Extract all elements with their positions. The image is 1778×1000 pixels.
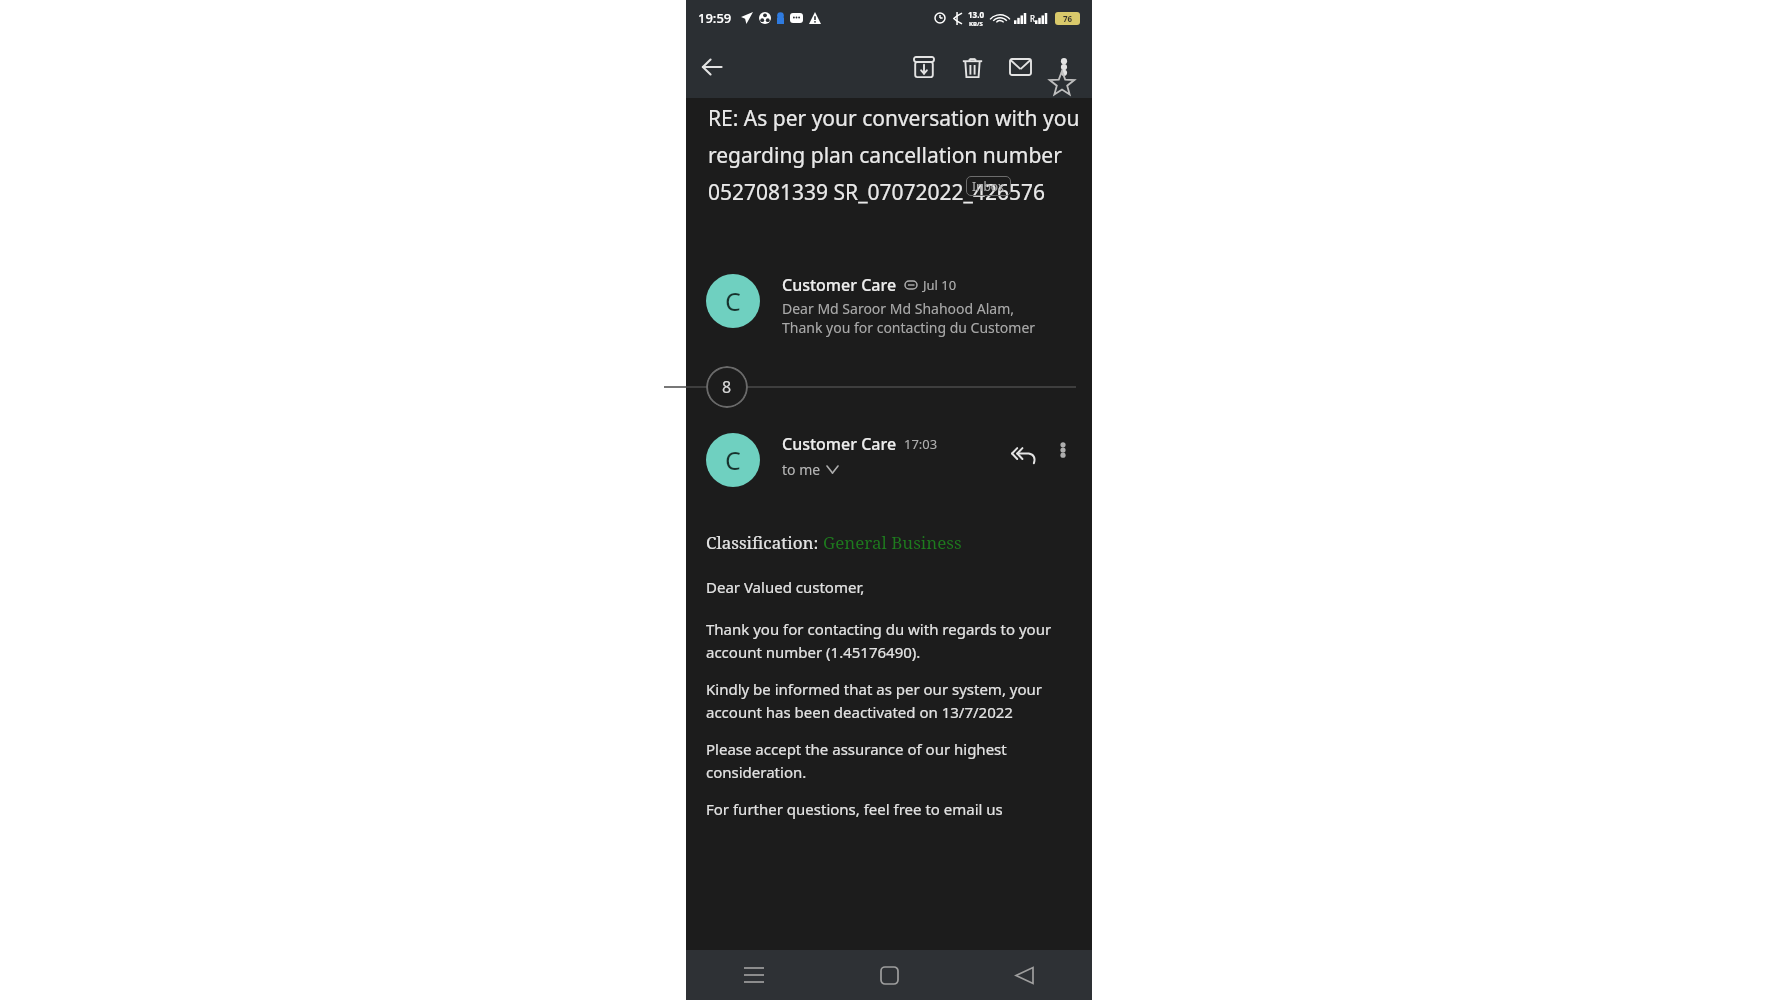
button[interactable]: Back <box>957 950 1092 1000</box>
staticText: Dear Md Saroor Md Shahood Alam, <box>782 299 1014 318</box>
button[interactable]: C <box>706 274 1076 337</box>
staticText: Thank you for contacting du with regards… <box>706 619 1078 662</box>
staticText: 17:03 <box>904 435 938 453</box>
button[interactable]: More options <box>1044 47 1084 87</box>
button[interactable]: More options <box>1046 433 1080 467</box>
staticText: Classification: <box>706 531 823 554</box>
staticText: KB/S <box>969 20 983 28</box>
button[interactable]: Home <box>822 950 957 1000</box>
button[interactable]: Recents <box>686 950 822 1000</box>
button[interactable]: Reply all <box>1002 433 1046 477</box>
button[interactable]: Inbox <box>972 178 1005 194</box>
staticText: Kindly be informed that as per our syste… <box>706 679 1078 722</box>
staticText: Inbox <box>972 178 1005 194</box>
button[interactable]: Mark unread <box>996 43 1044 91</box>
staticText: C <box>725 284 741 318</box>
staticText: C <box>725 443 741 477</box>
button[interactable]: Delete <box>948 43 996 91</box>
staticText: 8 <box>722 376 732 398</box>
staticText: 13.0 <box>968 9 984 20</box>
staticText: Customer Care <box>782 274 897 296</box>
staticText: General Business <box>823 531 962 554</box>
button[interactable]: Star <box>1040 62 1084 106</box>
staticText: Please accept the assurance of our highe… <box>706 739 1078 782</box>
staticText: Thank you for contacting du Customer <box>782 318 1036 337</box>
staticText: Dear Valued customer, <box>706 577 865 597</box>
button[interactable]: to me <box>782 460 838 479</box>
staticText: For further questions, feel free to emai… <box>706 799 1003 819</box>
staticText: Jul 10 <box>923 276 957 294</box>
button[interactable]: 8 <box>686 363 1092 411</box>
button[interactable]: Back <box>686 41 738 93</box>
button[interactable]: Archive <box>900 43 948 91</box>
staticText: 76 <box>1063 13 1073 24</box>
staticText: to me <box>782 460 821 479</box>
staticText: RE: As per your conversation with you re… <box>708 104 1084 206</box>
staticText: 19:59 <box>698 9 732 27</box>
staticText: R <box>1030 13 1035 24</box>
staticText: Customer Care <box>782 433 897 455</box>
